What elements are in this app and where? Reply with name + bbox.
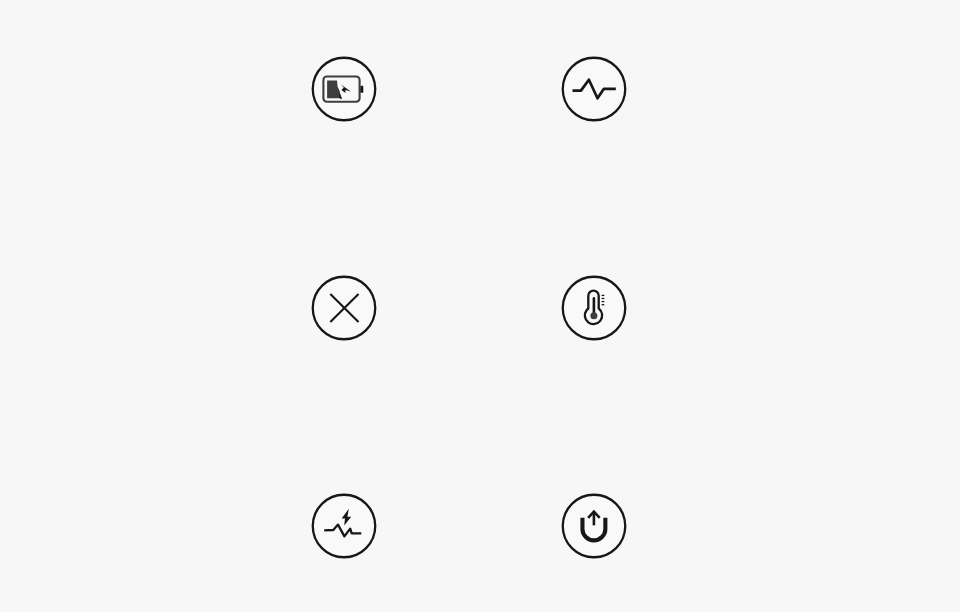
button[interactable]: Temperature — [561, 275, 627, 341]
button[interactable]: Close — [311, 275, 377, 341]
button[interactable]: Battery charging — [311, 56, 377, 122]
button[interactable]: Pulse — [561, 56, 627, 122]
button[interactable]: Pulse alert — [311, 493, 377, 559]
button[interactable]: Magnet — [561, 493, 627, 559]
